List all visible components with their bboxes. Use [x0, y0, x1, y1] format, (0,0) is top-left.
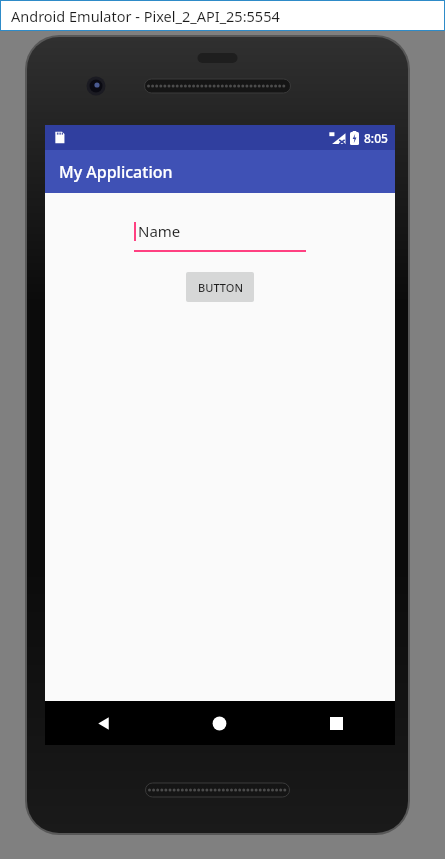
button[interactable]: Recent apps [278, 701, 395, 745]
button[interactable]: BUTTON [186, 272, 254, 302]
staticText: BUTTON [198, 280, 243, 295]
button[interactable]: Home [161, 701, 278, 745]
button[interactable]: Name [134, 219, 306, 252]
staticText: Name [138, 221, 181, 241]
staticText: 8:05 [364, 130, 388, 146]
button[interactable]: Back [45, 701, 161, 745]
staticText: My Application [59, 161, 173, 183]
staticText: Android Emulator - Pixel_2_API_25:5554 [11, 6, 280, 26]
